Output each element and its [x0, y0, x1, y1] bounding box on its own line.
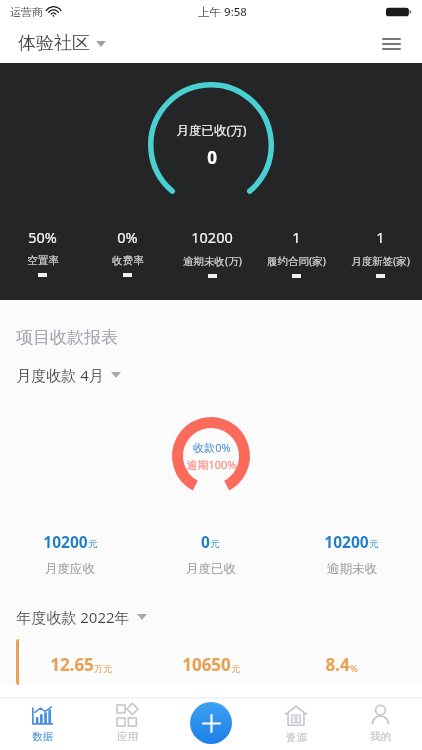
staticText: 收费率: [112, 254, 144, 267]
staticText: 逾期未收(万): [183, 254, 242, 268]
staticText: 0: [201, 531, 210, 552]
button[interactable]: 1: [338, 227, 422, 278]
staticText: 1: [376, 227, 385, 247]
button[interactable]: 应用: [85, 698, 170, 750]
staticText: 逾期未收: [327, 561, 377, 577]
staticText: 10200: [43, 531, 88, 552]
staticText: 元: [88, 538, 98, 550]
button[interactable]: 数据: [0, 698, 85, 750]
button[interactable]: 10200: [0, 531, 140, 577]
button[interactable]: 我的: [338, 698, 422, 750]
staticText: 体验社区: [18, 32, 90, 55]
button[interactable]: 10200: [170, 227, 254, 278]
staticText: 数据: [32, 730, 53, 743]
staticText: 月度已收: [186, 561, 236, 577]
staticText: 运营商: [10, 5, 43, 19]
staticText: 空置率: [27, 254, 59, 267]
button[interactable]: Add: [190, 702, 232, 744]
button[interactable]: 12.65: [16, 639, 406, 685]
staticText: 逾期100%: [186, 457, 237, 472]
staticText: 月度应收: [45, 561, 95, 577]
staticText: 1: [292, 227, 301, 247]
button[interactable]: 体验社区: [16, 28, 108, 59]
staticText: 10200: [191, 227, 233, 247]
staticText: 我的: [370, 730, 391, 743]
staticText: 元: [210, 538, 220, 550]
staticText: 上午 9:58: [198, 4, 247, 20]
button[interactable]: 1: [254, 227, 338, 278]
button[interactable]: 年度收款 2022年: [16, 607, 147, 627]
staticText: 元: [369, 538, 379, 550]
staticText: 资源: [286, 731, 307, 744]
button[interactable]: 资源: [254, 698, 338, 750]
staticText: 10650: [182, 653, 231, 676]
staticText: 12.65: [50, 653, 94, 676]
button[interactable]: 50%: [0, 227, 85, 277]
staticText: 元: [231, 663, 240, 674]
staticText: 月度收款 4月: [16, 365, 104, 385]
staticText: 收款0%: [193, 440, 231, 455]
staticText: 万元: [94, 663, 112, 674]
staticText: 年度收款 2022年: [16, 607, 130, 627]
staticText: 50%: [28, 227, 57, 247]
button[interactable]: 0%: [85, 227, 170, 277]
button[interactable]: 0: [140, 531, 281, 577]
staticText: 项目收款报表: [16, 327, 118, 348]
staticText: 10200: [324, 531, 369, 552]
staticText: 应用: [117, 730, 138, 743]
staticText: 月度新签(家): [351, 254, 410, 268]
staticText: 0: [207, 146, 217, 169]
staticText: 月度已收(万): [176, 122, 247, 139]
button[interactable]: Menu: [376, 29, 406, 59]
staticText: %: [350, 662, 358, 674]
staticText: 履约合同(家): [267, 254, 326, 268]
button[interactable]: 月度收款 4月: [16, 365, 121, 385]
staticText: 8.4: [325, 653, 350, 676]
staticText: 0%: [117, 227, 138, 247]
button[interactable]: 10200: [281, 531, 422, 577]
